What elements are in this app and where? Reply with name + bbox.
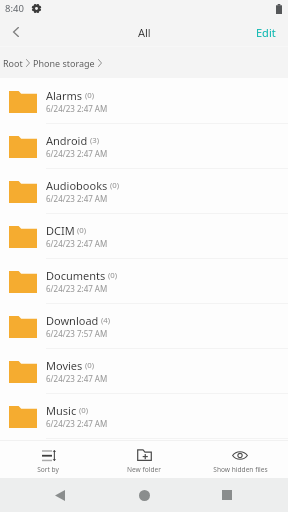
- staticText: (0): [108, 270, 118, 281]
- staticText: 6/24/23 2:47 AM: [46, 103, 108, 114]
- staticText: Sort by: [37, 465, 59, 474]
- staticText: (3): [90, 135, 100, 146]
- button[interactable]: Show hidden files: [192, 441, 288, 478]
- button[interactable]: Back: [49, 484, 71, 506]
- staticText: 6/24/23 2:47 AM: [46, 418, 108, 429]
- staticText: 6/24/23 2:47 AM: [46, 148, 108, 159]
- button[interactable]: Back: [0, 17, 32, 47]
- staticText: Android: [46, 133, 88, 148]
- button[interactable]: Android: [0, 124, 288, 169]
- staticText: (4): [101, 315, 111, 326]
- button[interactable]: Download: [0, 304, 288, 349]
- staticText: (0): [85, 90, 95, 101]
- staticText: Movies: [46, 358, 83, 373]
- staticText: Alarms: [46, 88, 83, 103]
- staticText: New folder: [127, 465, 161, 474]
- button[interactable]: Movies: [0, 349, 288, 394]
- staticText: 6/24/23 7:57 AM: [46, 328, 108, 339]
- staticText: Documents: [46, 268, 106, 283]
- button[interactable]: Audiobooks: [0, 169, 288, 214]
- button[interactable]: DCIM: [0, 214, 288, 259]
- staticText: (0): [79, 405, 89, 416]
- staticText: 6/24/23 2:47 AM: [46, 193, 108, 204]
- staticText: Edit: [256, 25, 276, 40]
- button[interactable]: Alarms: [0, 79, 288, 124]
- button[interactable]: Documents: [0, 259, 288, 304]
- button[interactable]: Sort by: [0, 441, 96, 478]
- staticText: Download: [46, 313, 99, 328]
- staticText: Music: [46, 403, 77, 418]
- button[interactable]: Root: [3, 57, 23, 69]
- button[interactable]: Music: [0, 394, 288, 439]
- staticText: 8:40: [5, 2, 24, 15]
- button[interactable]: New folder: [96, 441, 192, 478]
- button[interactable]: Home: [133, 484, 155, 506]
- staticText: (0): [110, 180, 120, 191]
- staticText: Audiobooks: [46, 178, 108, 193]
- staticText: 6/24/23 2:47 AM: [46, 373, 108, 384]
- staticText: DCIM: [46, 223, 75, 238]
- staticText: All: [138, 25, 151, 40]
- staticText: (0): [77, 225, 87, 236]
- button[interactable]: Recents: [216, 484, 238, 506]
- staticText: Show hidden files: [213, 465, 268, 474]
- staticText: 6/24/23 2:47 AM: [46, 238, 108, 249]
- staticText: 6/24/23 2:47 AM: [46, 283, 108, 294]
- button[interactable]: Phone storage: [33, 57, 95, 69]
- staticText: (0): [85, 360, 95, 371]
- button[interactable]: Edit: [256, 17, 276, 47]
